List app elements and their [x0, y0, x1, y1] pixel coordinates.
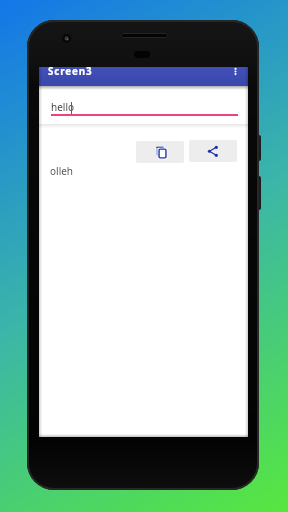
button[interactable]: [224, 67, 248, 86]
button[interactable]: [136, 141, 184, 163]
staticText: olleh: [50, 164, 74, 178]
button[interactable]: [189, 140, 237, 162]
staticText: Screen3: [48, 65, 93, 78]
staticText: hello: [51, 100, 75, 114]
button[interactable]: [51, 92, 238, 116]
